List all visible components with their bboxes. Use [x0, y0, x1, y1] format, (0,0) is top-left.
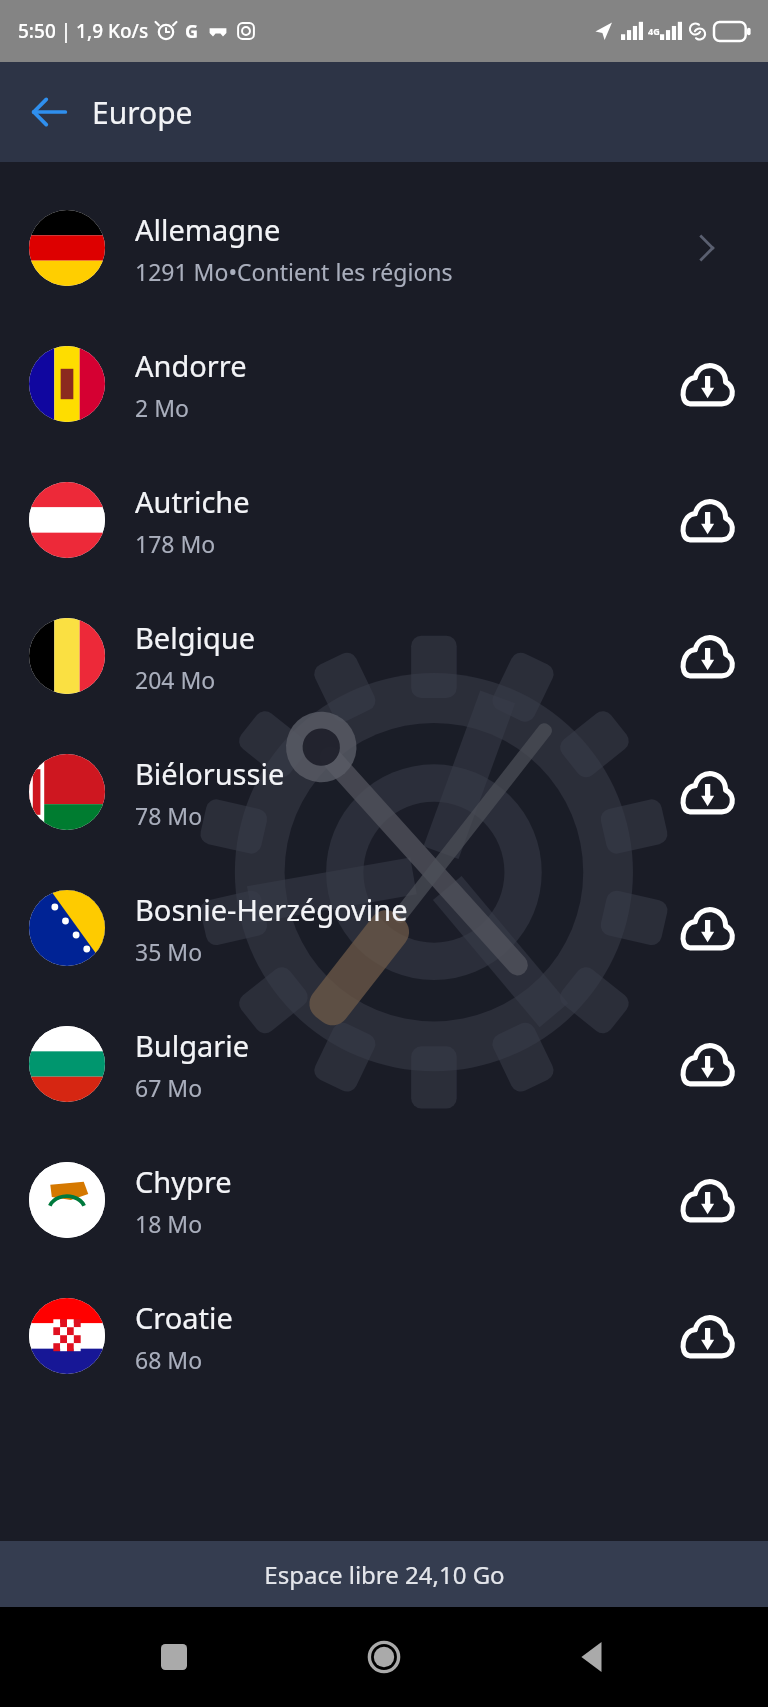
button[interactable]: Download: [668, 1025, 746, 1103]
staticText: Belgique: [135, 618, 256, 657]
staticText: 2 Mo: [135, 392, 189, 423]
button[interactable]: Download: [668, 753, 746, 831]
staticText: Chypre: [135, 1162, 232, 1201]
staticText: Espace libre 24,10 Go: [264, 1558, 505, 1591]
staticText: Croatie: [135, 1298, 233, 1337]
button[interactable]: Belgique: [0, 588, 768, 724]
staticText: Allemagne: [135, 210, 281, 249]
button[interactable]: Biélorussie: [0, 724, 768, 860]
button[interactable]: Download: [668, 617, 746, 695]
staticText: 4G: [648, 25, 660, 37]
button[interactable]: Download: [668, 1161, 746, 1239]
button[interactable]: Download: [668, 345, 746, 423]
button[interactable]: Croatie: [0, 1268, 768, 1404]
button[interactable]: Home: [348, 1621, 420, 1693]
button[interactable]: Back: [558, 1621, 630, 1693]
button[interactable]: Chypre: [0, 1132, 768, 1268]
button[interactable]: Autriche: [0, 452, 768, 588]
button[interactable]: Download: [668, 1297, 746, 1375]
button[interactable]: Open regions: [668, 209, 746, 287]
staticText: 78 Mo: [135, 800, 203, 831]
button[interactable]: Recents: [138, 1621, 210, 1693]
staticText: 1291 Mo•Contient les régions: [135, 256, 453, 287]
staticText: 204 Mo: [135, 664, 216, 695]
staticText: Bulgarie: [135, 1026, 250, 1065]
button[interactable]: Allemagne: [0, 180, 768, 316]
staticText: 68 Mo: [135, 1344, 203, 1375]
button[interactable]: Download: [668, 481, 746, 559]
button[interactable]: Back: [18, 81, 80, 143]
staticText: Biélorussie: [135, 754, 285, 793]
button[interactable]: Bulgarie: [0, 996, 768, 1132]
button[interactable]: Download: [668, 889, 746, 967]
staticText: G: [185, 19, 199, 44]
staticText: Bosnie-Herzégovine: [135, 890, 408, 929]
staticText: Andorre: [135, 346, 247, 385]
staticText: 35 Mo: [135, 936, 203, 967]
staticText: Europe: [92, 92, 193, 133]
button[interactable]: Bosnie-Herzégovine: [0, 860, 768, 996]
staticText: Autriche: [135, 482, 250, 521]
staticText: 67 Mo: [135, 1072, 203, 1103]
button[interactable]: Andorre: [0, 316, 768, 452]
staticText: 18 Mo: [135, 1208, 203, 1239]
staticText: 5:50 | 1,9 Ko/s: [18, 18, 149, 44]
staticText: 178 Mo: [135, 528, 216, 559]
